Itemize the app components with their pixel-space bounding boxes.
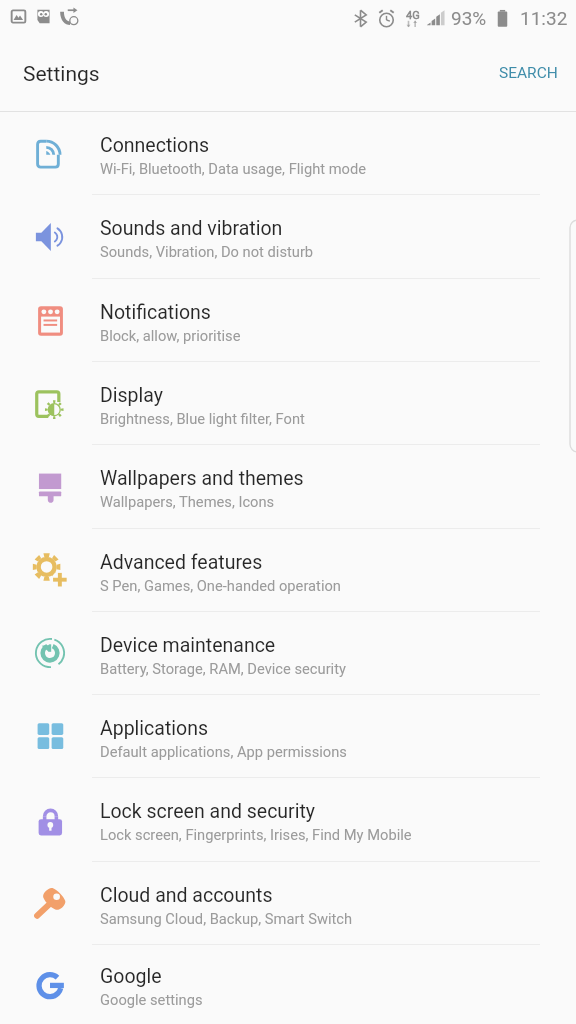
staticText: Sounds, Vibration, Do not disturb — [100, 243, 314, 260]
button[interactable]: Notifications — [0, 279, 576, 362]
staticText: 4G — [406, 9, 420, 22]
button[interactable]: Connections — [0, 112, 576, 195]
staticText: Settings — [23, 62, 100, 87]
staticText: Google settings — [100, 991, 203, 1008]
staticText: Display — [100, 384, 163, 407]
staticText: Connections — [100, 134, 209, 157]
staticText: Sounds and vibration — [100, 217, 283, 240]
staticText: Notifications — [100, 301, 211, 324]
button[interactable]: Sounds and vibration — [0, 195, 576, 279]
staticText: Device maintenance — [100, 634, 276, 657]
staticText: Block, allow, prioritise — [100, 327, 241, 344]
staticText: Google — [100, 965, 162, 988]
button[interactable]: SEARCH — [481, 54, 576, 92]
staticText: Advanced features — [100, 551, 263, 574]
button[interactable]: Lock screen and security — [0, 778, 576, 862]
staticText: Lock screen, Fingerprints, Irises, Find … — [100, 826, 412, 843]
button[interactable]: Google — [0, 945, 576, 1024]
staticText: Default applications, App permissions — [100, 743, 347, 760]
staticText: Wallpapers and themes — [100, 467, 304, 490]
button[interactable]: Cloud and accounts — [0, 862, 576, 945]
button[interactable]: Applications — [0, 695, 576, 778]
staticText: Wi-Fi, Bluetooth, Data usage, Flight mod… — [100, 160, 367, 177]
staticText: Brightness, Blue light filter, Font — [100, 410, 305, 427]
staticText: Samsung Cloud, Backup, Smart Switch — [100, 910, 353, 927]
button[interactable]: Display — [0, 362, 576, 445]
staticText: 11:32 — [520, 7, 568, 29]
button[interactable]: Device maintenance — [0, 612, 576, 695]
staticText: Battery, Storage, RAM, Device security — [100, 660, 346, 677]
staticText: Lock screen and security — [100, 800, 316, 823]
staticText: Wallpapers, Themes, Icons — [100, 493, 275, 510]
staticText: Cloud and accounts — [100, 884, 273, 907]
staticText: SEARCH — [499, 64, 558, 82]
button[interactable]: Wallpapers and themes — [0, 445, 576, 529]
staticText: 93% — [451, 7, 487, 29]
staticText: Applications — [100, 717, 208, 740]
staticText: S Pen, Games, One-handed operation — [100, 577, 341, 594]
button[interactable]: Advanced features — [0, 529, 576, 612]
